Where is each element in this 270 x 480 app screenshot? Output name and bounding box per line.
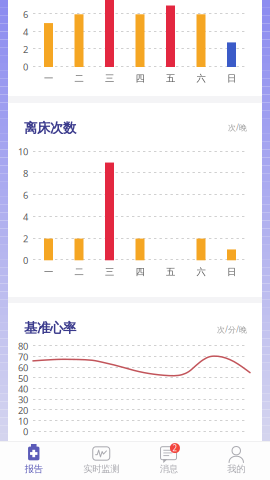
staticText: 80 — [18, 340, 28, 352]
staticText: 日 — [227, 266, 236, 278]
staticText: 20 — [18, 404, 28, 416]
staticText: 六 — [196, 266, 205, 278]
button[interactable]: 2 — [135, 441, 202, 480]
button[interactable]: 实时监测 — [67, 441, 135, 480]
button[interactable]: 我的 — [202, 441, 270, 480]
staticText: 6 — [23, 189, 28, 201]
staticText: 一 — [44, 73, 53, 84]
staticText: 0 — [23, 254, 28, 266]
staticText: 三 — [105, 266, 114, 278]
staticText: 次/晚 — [228, 122, 247, 133]
staticText: 实时监测 — [83, 463, 119, 475]
staticText: 0 — [23, 425, 28, 438]
staticText: 四 — [135, 73, 144, 84]
staticText: 30 — [18, 393, 28, 406]
staticText: 五 — [166, 266, 175, 278]
staticText: 60 — [18, 361, 28, 374]
staticText: 三 — [105, 73, 114, 84]
staticText: 50 — [18, 372, 28, 384]
staticText: 4 — [23, 26, 28, 38]
staticText: 二 — [74, 266, 83, 278]
staticText: 报告 — [25, 463, 43, 475]
staticText: 一 — [44, 266, 53, 278]
staticText: 四 — [135, 266, 144, 278]
staticText: 10 — [18, 145, 28, 158]
staticText: 二 — [74, 73, 83, 84]
staticText: 8 — [23, 167, 28, 180]
staticText: 2 — [23, 43, 28, 56]
staticText: 五 — [166, 73, 175, 84]
button[interactable]: 报告 — [0, 441, 67, 480]
staticText: 6 — [23, 8, 28, 20]
staticText: 70 — [18, 351, 28, 363]
staticText: 2 — [172, 443, 177, 453]
staticText: 日 — [227, 73, 236, 84]
staticText: 离床次数 — [24, 120, 76, 136]
staticText: 基准心率 — [24, 320, 76, 336]
staticText: 0 — [23, 61, 28, 73]
staticText: 4 — [23, 211, 28, 223]
staticText: 2 — [23, 232, 28, 245]
staticText: 消息 — [160, 463, 178, 475]
staticText: 次/分/晚 — [217, 324, 247, 335]
staticText: 我的 — [227, 463, 245, 475]
staticText: 六 — [196, 73, 205, 84]
staticText: 10 — [18, 415, 28, 427]
staticText: 40 — [18, 383, 28, 395]
